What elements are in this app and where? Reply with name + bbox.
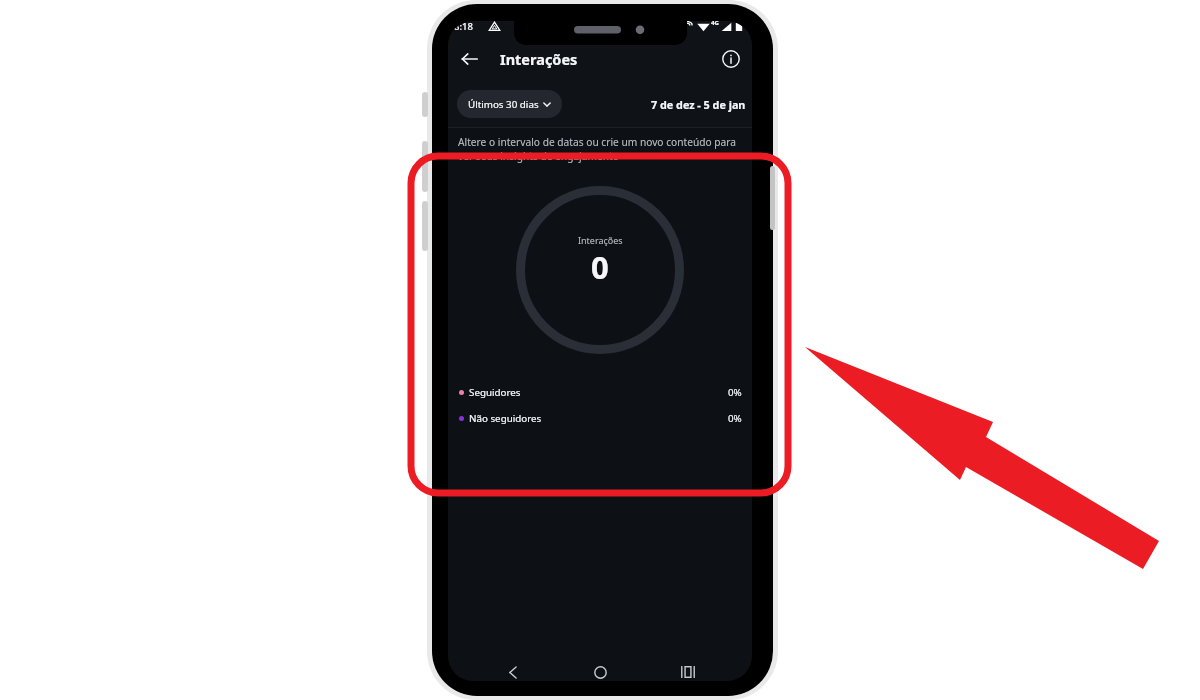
- staticText: 7 de dez - 5 de jan: [651, 97, 746, 112]
- staticText: 0%: [728, 412, 742, 425]
- button[interactable]: Voltar: [496, 655, 530, 681]
- button[interactable]: Voltar: [453, 45, 485, 72]
- staticText: Seguidores: [469, 386, 521, 399]
- staticText: Não seguidores: [469, 412, 542, 425]
- staticText: Altere o intervalo de datas ou crie um n…: [458, 135, 744, 163]
- button[interactable]: Não seguidores: [448, 409, 752, 427]
- staticText: 0%: [728, 386, 742, 399]
- button[interactable]: Início: [583, 655, 617, 681]
- staticText: 0: [591, 246, 609, 288]
- button[interactable]: Últimos 30 dias: [457, 90, 562, 118]
- button[interactable]: Seguidores: [448, 383, 752, 401]
- staticText: Interações: [500, 49, 578, 69]
- staticText: 4G: [711, 21, 719, 27]
- button[interactable]: Informações: [717, 45, 745, 72]
- button[interactable]: Recentes: [671, 655, 705, 681]
- staticText: Interações: [578, 234, 623, 246]
- staticText: Últimos 30 dias: [468, 98, 539, 111]
- staticText: 8:18: [454, 21, 473, 33]
